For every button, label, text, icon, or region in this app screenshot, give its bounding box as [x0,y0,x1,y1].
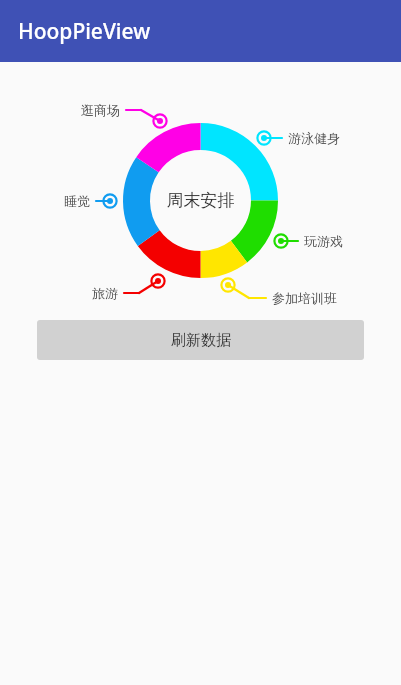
button[interactable]: 刷新数据 [37,320,364,360]
staticText: HoopPieView [18,17,151,46]
staticText: 刷新数据 [171,331,231,350]
